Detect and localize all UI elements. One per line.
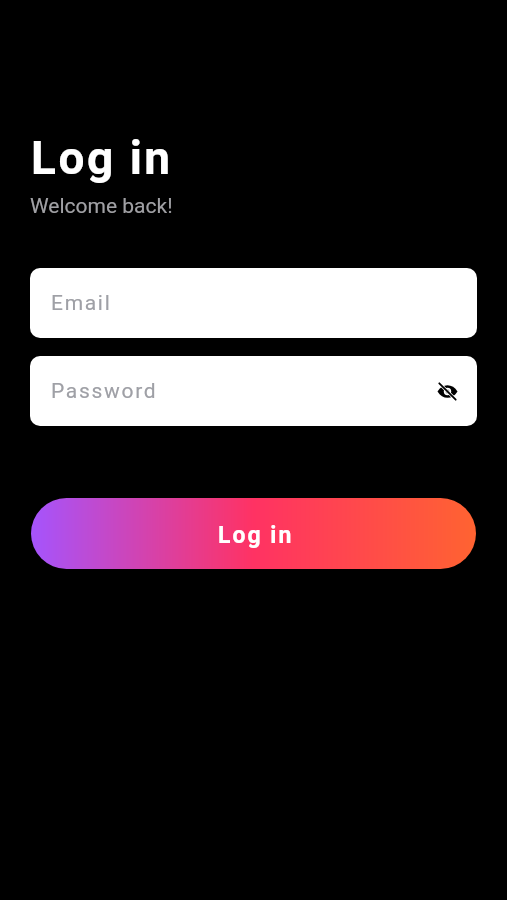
button[interactable]: Email bbox=[30, 268, 477, 338]
staticText: Welcome back! bbox=[30, 194, 173, 219]
button[interactable]: Log in bbox=[31, 498, 476, 569]
staticText: Log in bbox=[218, 522, 294, 549]
button[interactable]: Toggle password visibility bbox=[425, 369, 469, 413]
button[interactable]: Password bbox=[30, 356, 477, 426]
staticText: Email bbox=[51, 291, 112, 316]
staticText: Log in bbox=[31, 131, 173, 185]
staticText: Password bbox=[51, 379, 158, 404]
